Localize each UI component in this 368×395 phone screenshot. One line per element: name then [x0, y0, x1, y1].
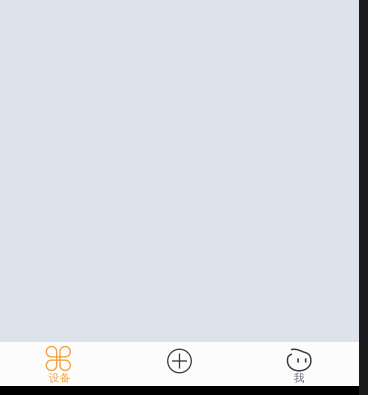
- button[interactable]: Add: [120, 342, 239, 386]
- staticText: 我: [294, 371, 305, 384]
- button[interactable]: 设备: [0, 342, 120, 386]
- staticText: 设备: [49, 371, 71, 384]
- button[interactable]: 我: [239, 342, 359, 386]
